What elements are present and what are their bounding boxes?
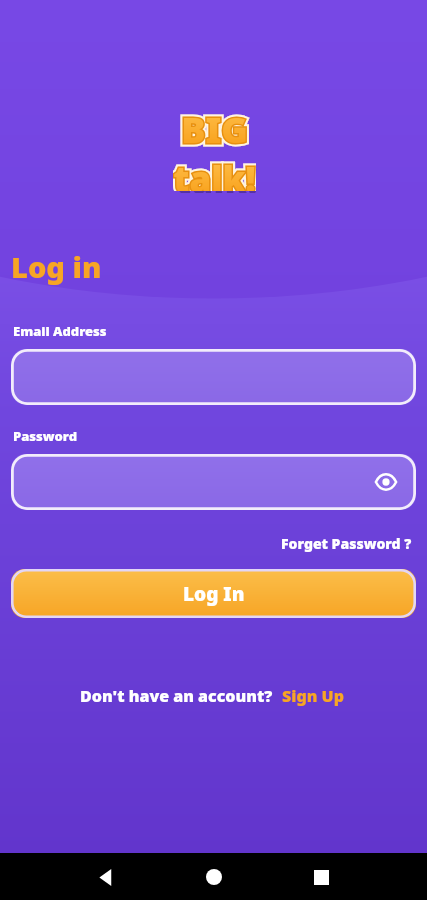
button[interactable]: Sign Up (280, 682, 347, 710)
staticText: talk! (175, 157, 258, 193)
button[interactable] (11, 349, 416, 405)
staticText: BIG (181, 105, 248, 154)
button[interactable]: Home (196, 859, 232, 895)
staticText: BIG (181, 105, 248, 154)
button[interactable]: Log In (11, 569, 416, 618)
button[interactable]: Recent apps (303, 859, 339, 895)
button[interactable]: Show password (371, 467, 401, 497)
staticText: Log In (183, 581, 245, 607)
staticText: Don't have an account? (80, 685, 273, 707)
staticText: Sign Up (282, 685, 345, 707)
staticText: Email Address (13, 322, 107, 340)
staticText: Log in (11, 247, 102, 286)
button[interactable]: Back (88, 859, 124, 895)
staticText: talk! (173, 155, 256, 191)
staticText: talk! (173, 155, 256, 191)
button[interactable]: Show password (11, 454, 416, 510)
staticText: Password (13, 427, 78, 445)
button[interactable]: Forget Password ? (277, 530, 416, 557)
staticText: Forget Password ? (281, 534, 412, 553)
staticText: talk! (173, 155, 256, 191)
staticText: BIG (183, 107, 250, 156)
staticText: BIG (181, 105, 248, 154)
